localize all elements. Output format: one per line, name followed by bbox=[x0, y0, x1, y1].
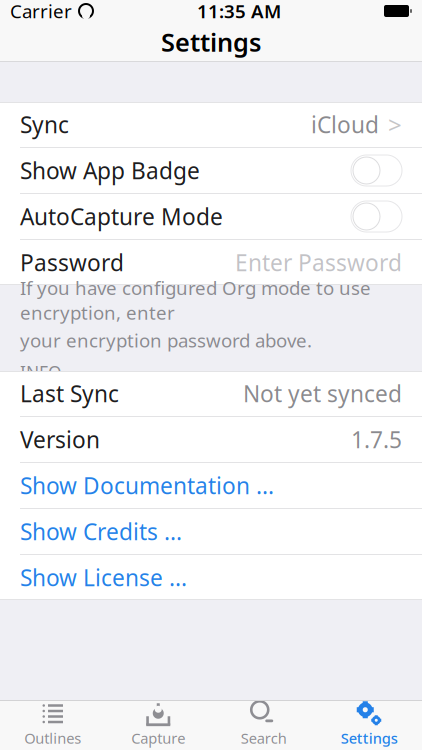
staticText: Not yet synced bbox=[243, 378, 402, 408]
staticText: Last Sync bbox=[20, 378, 119, 408]
staticText: Carrier bbox=[10, 0, 72, 23]
button[interactable]: Capture bbox=[105, 700, 211, 749]
staticText: Show License ... bbox=[20, 562, 187, 592]
button[interactable]: Outlines bbox=[0, 700, 105, 749]
staticText: Show App Badge bbox=[20, 155, 200, 185]
staticText: Settings bbox=[341, 728, 398, 748]
staticText: If you have configured Org mode to use e… bbox=[20, 275, 371, 325]
staticText: > bbox=[388, 109, 402, 140]
staticText: Settings bbox=[161, 25, 261, 59]
button[interactable]: Search bbox=[211, 700, 316, 749]
staticText: AutoCapture Mode bbox=[20, 201, 223, 231]
staticText: iCloud bbox=[311, 109, 379, 139]
staticText: Show Documentation ... bbox=[20, 470, 274, 500]
staticText: your encryption password above. bbox=[20, 328, 312, 353]
button[interactable]: Sync bbox=[0, 102, 422, 147]
staticText: 11:35 AM bbox=[197, 0, 281, 23]
button[interactable]: Show License ... bbox=[0, 555, 422, 600]
button[interactable]: Show Credits ... bbox=[0, 509, 422, 554]
staticText: Enter Password bbox=[235, 247, 402, 277]
staticText: Show Credits ... bbox=[20, 516, 182, 546]
staticText: Search bbox=[241, 728, 287, 748]
button[interactable]: Password bbox=[0, 240, 422, 285]
button[interactable]: Version bbox=[0, 417, 422, 462]
staticText: INFO bbox=[20, 361, 62, 384]
staticText: Capture bbox=[131, 728, 185, 748]
staticText: Outlines bbox=[24, 728, 81, 748]
button[interactable]: Settings bbox=[316, 700, 422, 749]
staticText: Sync bbox=[20, 109, 69, 139]
button[interactable]: Show App Badge bbox=[0, 148, 422, 193]
staticText: Password bbox=[20, 247, 124, 277]
button[interactable]: Last Sync bbox=[0, 371, 422, 416]
button[interactable]: AutoCapture Mode bbox=[0, 194, 422, 239]
button[interactable]: Show Documentation ... bbox=[0, 463, 422, 508]
staticText: 1.7.5 bbox=[351, 424, 402, 454]
staticText: Version bbox=[20, 424, 100, 454]
